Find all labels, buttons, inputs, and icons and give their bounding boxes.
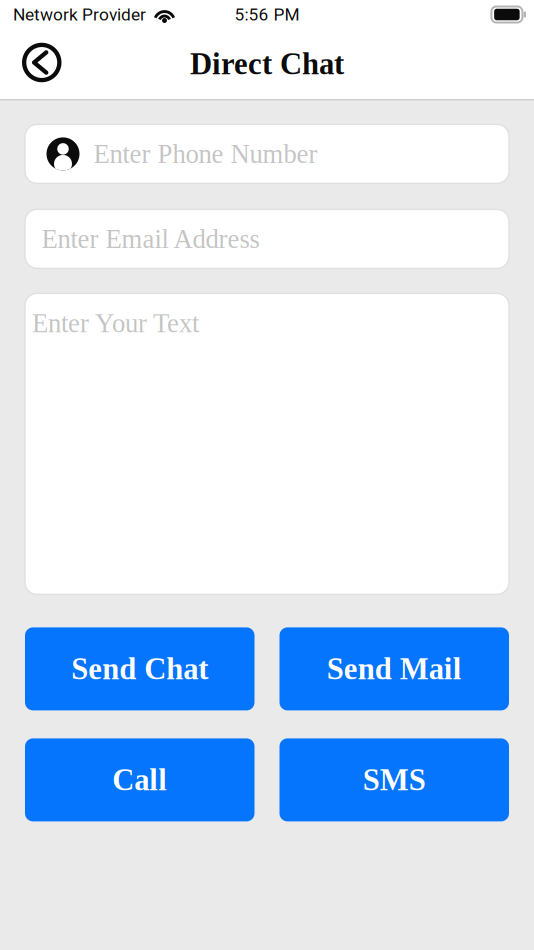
staticText: Call <box>112 763 167 797</box>
staticText: Enter Phone Number <box>93 139 317 169</box>
button[interactable]: Send Chat <box>25 627 254 710</box>
staticText: Send Chat <box>71 652 208 686</box>
staticText: Network Provider <box>13 4 146 25</box>
staticText: SMS <box>363 763 426 797</box>
staticText: Direct Chat <box>190 47 344 81</box>
button[interactable]: Send Mail <box>279 627 509 710</box>
staticText: Enter Email Address <box>41 224 259 254</box>
staticText: Send Mail <box>327 652 462 686</box>
button[interactable]: Call <box>25 738 254 821</box>
staticText: PM <box>273 4 299 25</box>
button[interactable]: Back <box>0 29 69 99</box>
button[interactable]: SMS <box>279 738 509 821</box>
staticText: Enter Your Text <box>32 308 199 338</box>
staticText: 5:56 <box>234 4 268 25</box>
